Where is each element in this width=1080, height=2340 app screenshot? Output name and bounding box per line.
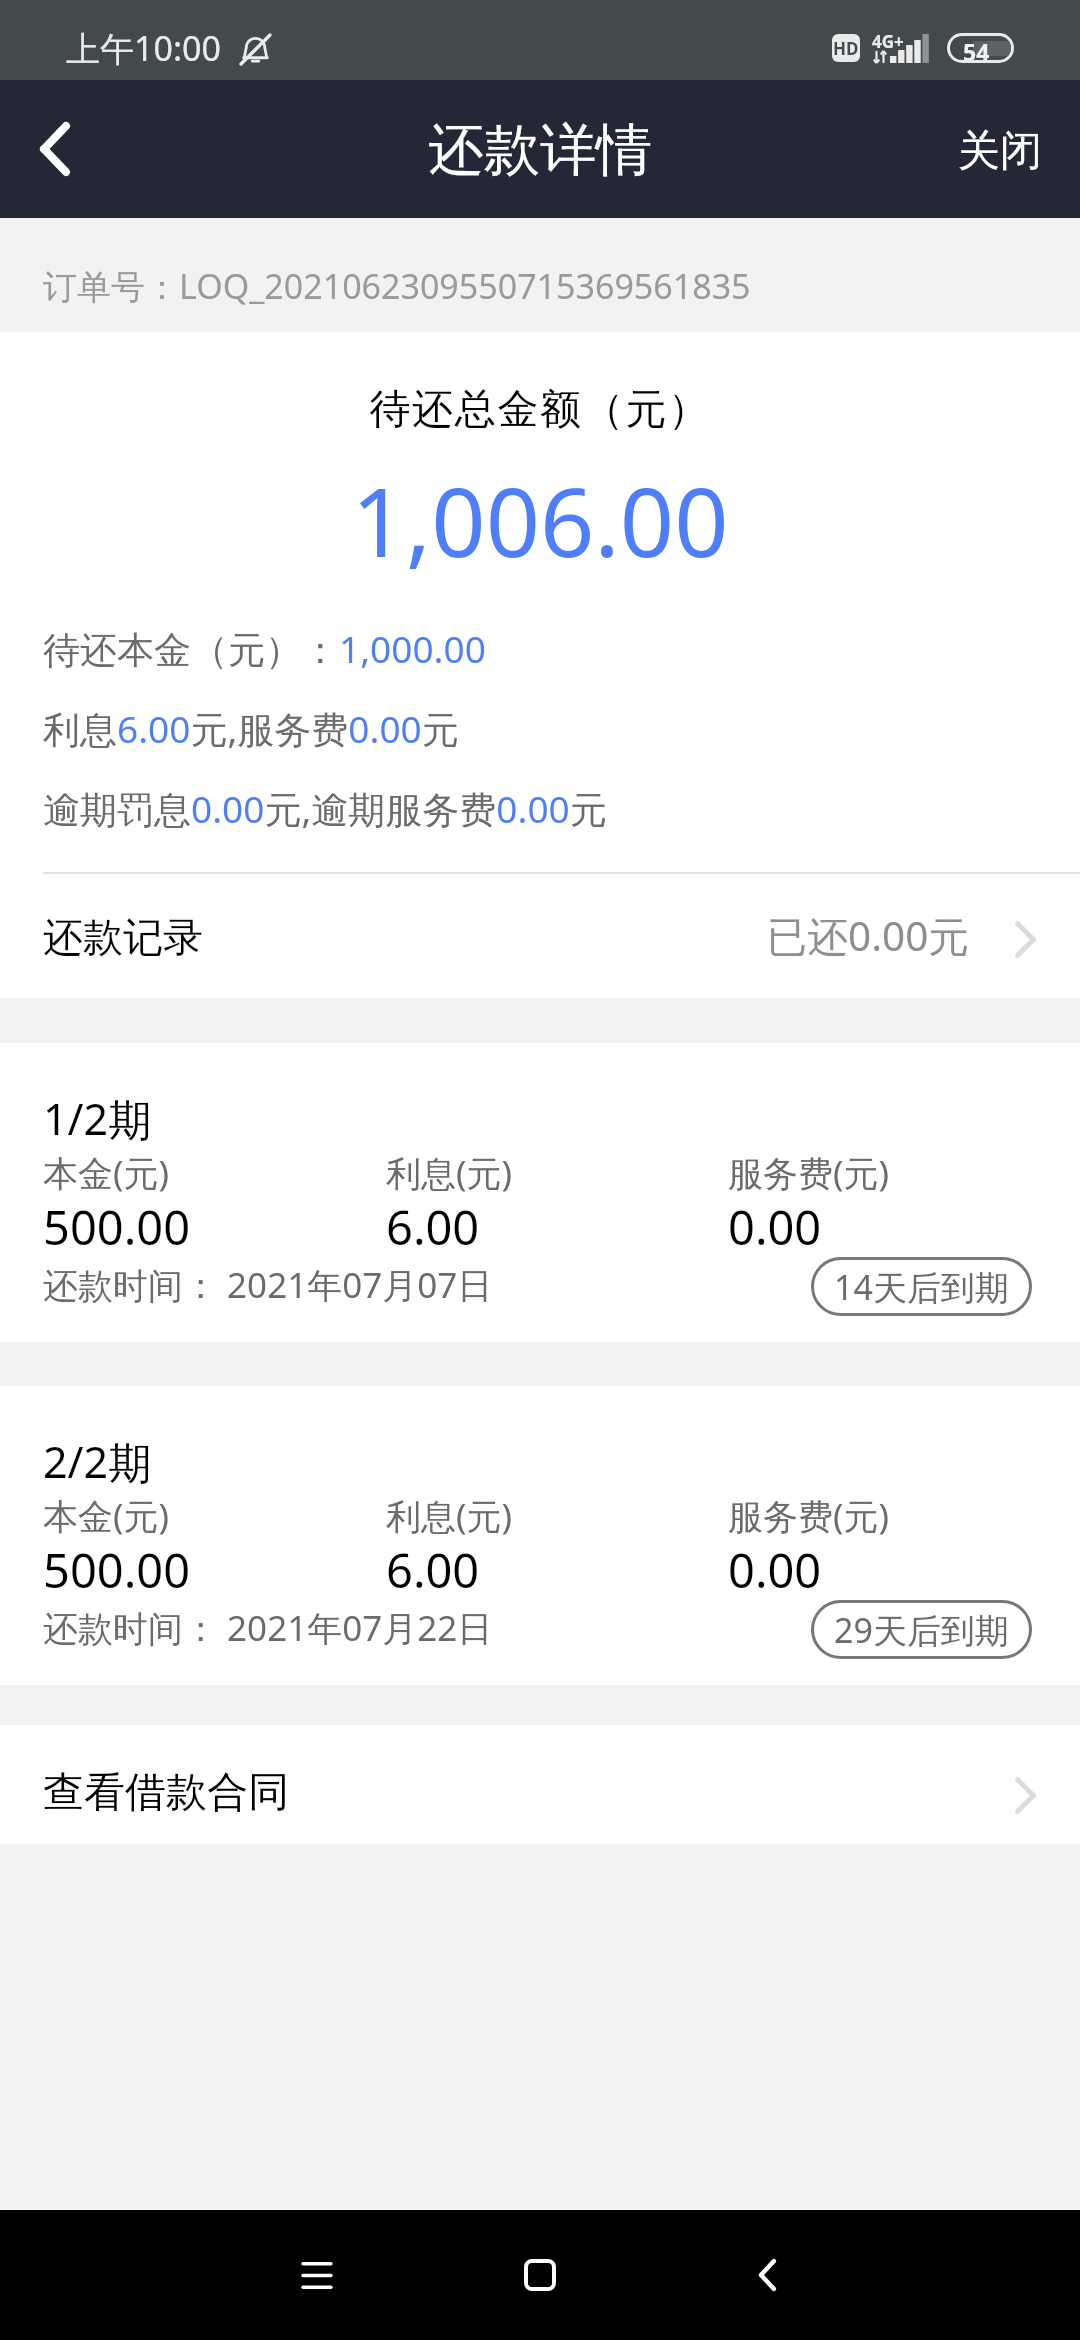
button[interactable]: 关闭 — [920, 83, 1080, 216]
staticText: 还款详情 — [428, 115, 652, 186]
staticText: 利息(元) — [386, 1492, 513, 1540]
staticText: 还款记录 — [43, 912, 203, 962]
button[interactable]: 还款记录 — [0, 867, 1080, 995]
staticText: 500.00 — [43, 1538, 191, 1602]
staticText: 2/2期 — [43, 1432, 152, 1491]
staticText: 查看借款合同 — [43, 1767, 289, 1819]
staticText: 待还本金（元）：1,000.00 — [43, 623, 486, 674]
staticText: 逾期罚息0.00元,逾期服务费0.00元 — [43, 783, 607, 834]
button[interactable]: Back — [707, 2215, 827, 2335]
staticText: 待还总金额（元） — [0, 384, 1080, 436]
button[interactable]: 返回 — [0, 80, 120, 218]
button[interactable]: 1/2期 — [0, 1043, 1080, 1342]
button[interactable]: Home — [480, 2215, 600, 2335]
staticText: HD — [833, 37, 859, 60]
staticText: 0.00 — [728, 1195, 822, 1259]
staticText: 订单号：LOQ_2021062309550715369561835 — [43, 263, 751, 309]
staticText: 4G+ — [872, 30, 904, 53]
staticText: 已还0.00元 — [767, 908, 969, 963]
staticText: 还款时间： 2021年07月07日 — [43, 1261, 493, 1309]
button[interactable]: 2/2期 — [0, 1386, 1080, 1685]
staticText: 还款时间： 2021年07月22日 — [43, 1604, 493, 1652]
staticText: 500.00 — [43, 1195, 191, 1259]
staticText: 关闭 — [958, 125, 1042, 178]
staticText: 利息(元) — [386, 1149, 513, 1197]
staticText: 本金(元) — [43, 1492, 170, 1540]
staticText: 0.00 — [728, 1538, 822, 1602]
staticText: 服务费(元) — [728, 1492, 890, 1540]
staticText: 1/2期 — [43, 1089, 152, 1148]
staticText: 本金(元) — [43, 1149, 170, 1197]
staticText: 6.00 — [386, 1538, 480, 1602]
staticText: 1,006.00 — [0, 455, 1080, 584]
staticText: 54 — [963, 36, 990, 60]
staticText: 利息6.00元,服务费0.00元 — [43, 703, 459, 754]
staticText: 29天后到期 — [834, 1607, 1009, 1653]
staticText: 上午10:00 — [66, 25, 221, 71]
staticText: 14天后到期 — [834, 1264, 1009, 1310]
staticText: 6.00 — [386, 1195, 480, 1259]
button[interactable]: 查看借款合同 — [0, 1725, 1080, 1844]
staticText: 服务费(元) — [728, 1149, 890, 1197]
button[interactable]: Recent apps — [257, 2215, 377, 2335]
